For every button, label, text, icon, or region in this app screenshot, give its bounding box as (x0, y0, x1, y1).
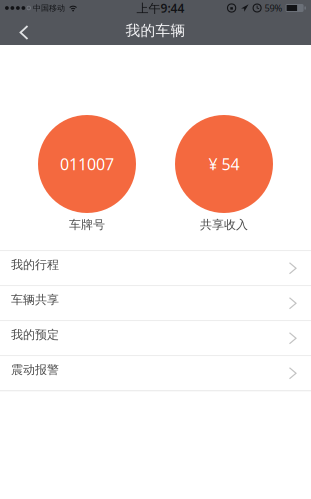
staticText: 我的车辆 (125, 21, 185, 39)
staticText: 我的预定 (11, 327, 59, 342)
staticText: 车辆共享 (11, 292, 59, 307)
staticText: 011007 (60, 153, 114, 175)
staticText: ¥ 54 (208, 153, 239, 175)
staticText: 共享收入 (200, 217, 248, 232)
button[interactable]: 我的行程 (0, 251, 311, 285)
staticText: 上午9:44 (136, 0, 184, 16)
staticText: 车牌号 (69, 217, 105, 232)
button[interactable]: 震动报警 (0, 356, 311, 390)
button[interactable]: 我的预定 (0, 321, 311, 355)
button[interactable]: 车辆共享 (0, 286, 311, 320)
button[interactable]: Back (0, 16, 41, 45)
staticText: 中国移动 (33, 3, 65, 13)
staticText: 59% (265, 2, 283, 14)
staticText: 震动报警 (11, 362, 59, 377)
staticText: 我的行程 (11, 257, 59, 272)
